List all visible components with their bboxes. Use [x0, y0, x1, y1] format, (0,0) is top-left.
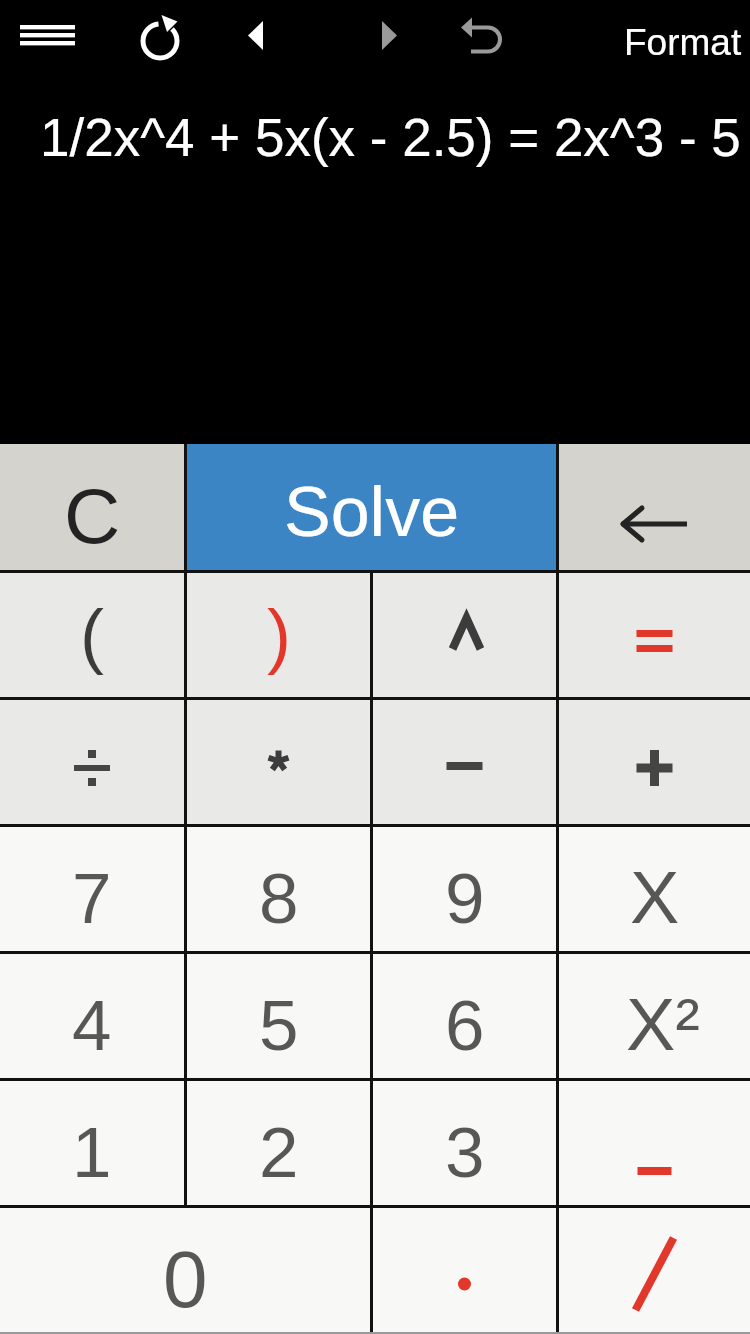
button[interactable]: X² [559, 954, 750, 1078]
button[interactable]: Solve [187, 444, 556, 570]
button[interactable] [8, 8, 88, 64]
button[interactable]: C [0, 444, 184, 570]
staticText: 8 [259, 859, 299, 938]
button[interactable]: 4 [0, 954, 184, 1078]
button[interactable] [368, 8, 424, 64]
staticText: C [64, 472, 121, 559]
staticText: ( [80, 595, 104, 675]
button[interactable] [559, 1081, 750, 1205]
button[interactable]: ) [187, 573, 370, 697]
button[interactable] [559, 700, 750, 824]
button[interactable] [559, 1208, 750, 1332]
button[interactable] [373, 1208, 556, 1332]
button[interactable]: 2 [187, 1081, 370, 1205]
staticText: 2 [259, 1113, 299, 1192]
button[interactable] [130, 8, 190, 64]
staticText: 0 [163, 1235, 208, 1324]
button[interactable] [235, 8, 291, 64]
button[interactable]: X [559, 827, 750, 951]
staticText: 3 [445, 1113, 485, 1192]
button[interactable] [373, 573, 556, 697]
button[interactable]: ( [0, 573, 184, 697]
staticText: Format [624, 22, 742, 63]
button[interactable]: 1 [0, 1081, 184, 1205]
button[interactable] [373, 700, 556, 824]
staticText: Solve [284, 473, 460, 551]
button[interactable]: 8 [187, 827, 370, 951]
staticText: X² [626, 983, 700, 1066]
button[interactable] [559, 573, 750, 697]
button[interactable]: 5 [187, 954, 370, 1078]
staticText: 5 [259, 986, 299, 1065]
button[interactable] [0, 700, 184, 824]
button[interactable]: 7 [0, 827, 184, 951]
button[interactable] [452, 8, 512, 64]
staticText: 9 [445, 859, 485, 938]
button[interactable]: 6 [373, 954, 556, 1078]
button[interactable]: Format [624, 22, 744, 66]
button[interactable]: 9 [373, 827, 556, 951]
staticText: 4 [72, 986, 112, 1065]
staticText: ) [267, 595, 291, 675]
button[interactable] [187, 700, 370, 824]
button[interactable]: 0 [0, 1208, 370, 1332]
staticText: 1/2x^4 + 5x(x - 2.5) = 2x^3 - 5 [40, 108, 741, 167]
staticText: X [630, 856, 680, 939]
staticText: 7 [72, 859, 112, 938]
staticText: 6 [445, 986, 485, 1065]
button[interactable] [559, 444, 750, 570]
staticText: 1 [72, 1113, 112, 1192]
button[interactable]: 3 [373, 1081, 556, 1205]
